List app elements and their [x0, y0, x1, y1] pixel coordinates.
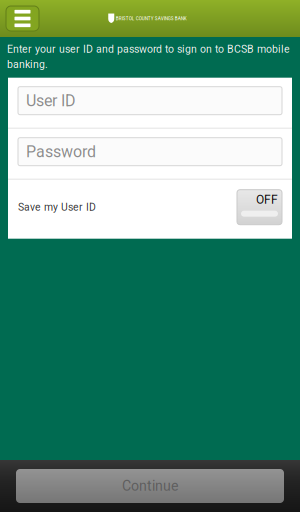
- staticText: User ID: [26, 91, 76, 110]
- staticText: OFF: [256, 193, 278, 207]
- staticText: Enter your user ID and password to sign …: [7, 43, 290, 71]
- staticText: Save my User ID: [18, 201, 96, 213]
- staticText: Password: [26, 142, 96, 161]
- staticText: BRISTOL COUNTY SAVINGS BANK: [116, 15, 187, 22]
- button[interactable]: Menu: [0, 6, 39, 31]
- button[interactable]: Save my User ID, off: [237, 190, 282, 225]
- staticText: Continue: [122, 478, 178, 494]
- button[interactable]: Continue: [0, 469, 300, 503]
